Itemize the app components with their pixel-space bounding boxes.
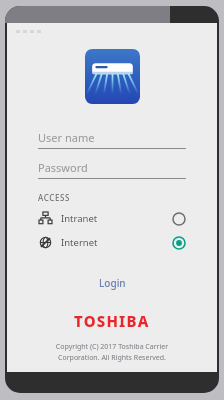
staticText: TOSHIBA <box>74 311 150 331</box>
button[interactable]: Internet <box>38 233 186 252</box>
staticText: ACCESS <box>38 192 70 203</box>
staticText: User name <box>38 130 95 145</box>
staticText: Intranet <box>61 212 98 225</box>
button[interactable]: Login <box>87 272 138 294</box>
staticText: Internet <box>61 236 98 249</box>
button[interactable]: Password <box>38 160 186 179</box>
staticText: Login <box>99 276 126 290</box>
button[interactable]: Intranet <box>38 209 186 228</box>
button[interactable]: User name <box>38 130 186 149</box>
staticText: Password <box>38 160 88 175</box>
staticText: Copyright (C) 2017 Toshiba Carrier Corpo… <box>7 342 217 362</box>
